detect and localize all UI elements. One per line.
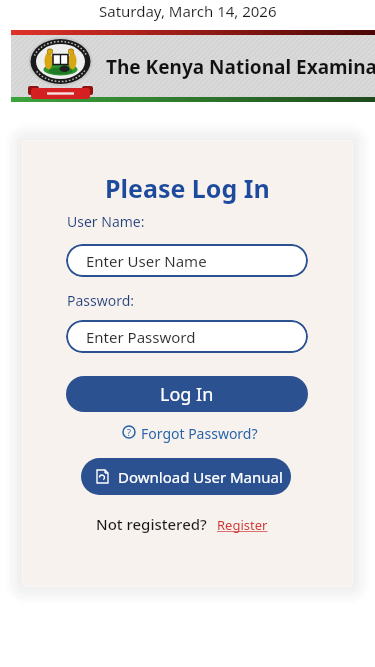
staticText: Download User Manual	[118, 467, 283, 487]
staticText: Please Log In	[105, 171, 270, 205]
staticText: User Name:	[67, 212, 145, 231]
staticText: Password:	[67, 291, 135, 310]
staticText: The Kenya National Examinations Council	[106, 54, 375, 80]
button[interactable]: Enter Password	[66, 320, 308, 353]
button[interactable]: Enter User Name	[66, 244, 308, 277]
button[interactable]: Download User Manual	[81, 458, 291, 495]
button[interactable]: ?	[25, 424, 354, 443]
staticText: ?	[127, 426, 131, 438]
staticText: Not registered?	[96, 514, 207, 534]
staticText: Enter Password	[86, 327, 196, 347]
staticText: Log In	[160, 382, 214, 407]
staticText: Saturday, March 14, 2026	[99, 1, 277, 21]
staticText: Forgot Password?	[141, 424, 258, 443]
staticText: Enter User Name	[86, 251, 207, 271]
button[interactable]: Log In	[66, 376, 308, 412]
staticText: Register	[217, 516, 268, 534]
button[interactable]: Register	[217, 516, 268, 534]
